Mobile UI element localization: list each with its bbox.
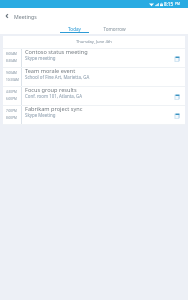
button[interactable]: 4:30PM [3,87,185,105]
staticText: Skype meeting [25,55,56,61]
staticText: Team morale event [25,67,76,75]
staticText: School of Fine Art, Marietta, GA [25,74,90,80]
staticText: 10:30AM [6,78,19,82]
staticText: 8:00AM [6,52,17,56]
staticText: Thursday, June 4th [76,39,112,45]
staticText: 7:00PM [6,109,17,113]
staticText: Fabrikam project sync [25,105,83,113]
staticText: PM [175,2,180,6]
staticText: Contoso status meeting [25,48,88,56]
button[interactable]: 7:00PM [3,106,185,124]
staticText: 8:00PM [6,116,17,120]
button[interactable]: Join Skype meeting [171,110,182,121]
staticText: 8:15 [164,1,174,7]
button[interactable]: Back [0,8,14,24]
staticText: Today [68,26,81,32]
staticText: 6:00PM [6,97,17,101]
button[interactable]: Tomorrow [94,24,134,34]
button[interactable]: Today [54,24,94,34]
staticText: Tomorrow [103,26,126,32]
staticText: Focus group results [25,86,77,94]
button[interactable]: Join Skype meeting [171,53,182,64]
staticText: Skype Meeting [25,112,56,118]
button[interactable]: Join Skype meeting [171,91,182,102]
staticText: 4:30PM [6,90,17,94]
staticText: Conf. room 101, Atlanta, GA [25,93,83,99]
button[interactable]: 8:00AM [3,49,185,67]
staticText: 9:00AM [6,71,17,75]
staticText: Meetings [14,13,37,20]
staticText: 8:30AM [6,59,17,63]
button[interactable]: 9:00AM [3,68,185,86]
